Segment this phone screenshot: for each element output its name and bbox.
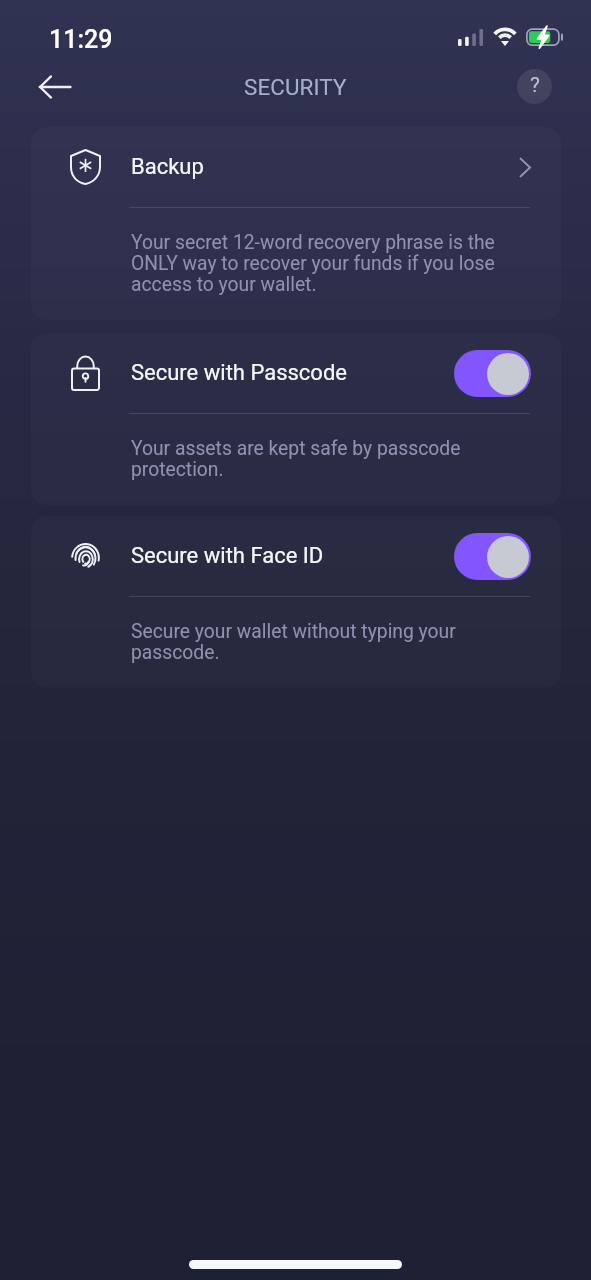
button[interactable]: Backup	[31, 127, 561, 320]
staticText: 11:29	[49, 25, 113, 54]
staticText: Your secret 12-word recovery phrase is t…	[131, 231, 508, 295]
staticText: SECURITY	[244, 74, 347, 100]
staticText: Your assets are kept safe by passcode pr…	[131, 437, 508, 480]
staticText: ?	[530, 73, 540, 98]
staticText: Secure your wallet without typing your p…	[131, 620, 508, 663]
button[interactable]: Secure with Face ID	[454, 533, 531, 580]
staticText: Secure with Passcode	[131, 360, 454, 386]
staticText: Secure with Face ID	[131, 543, 454, 569]
button[interactable]: Secure with Passcode	[454, 350, 531, 397]
other: Open backup	[519, 157, 531, 178]
button[interactable]: Help	[517, 69, 552, 104]
button[interactable]: Secure with Passcode	[31, 333, 561, 505]
button[interactable]: Back	[31, 63, 79, 111]
staticText: Backup	[131, 154, 519, 180]
button[interactable]: Secure with Face ID	[31, 516, 561, 688]
